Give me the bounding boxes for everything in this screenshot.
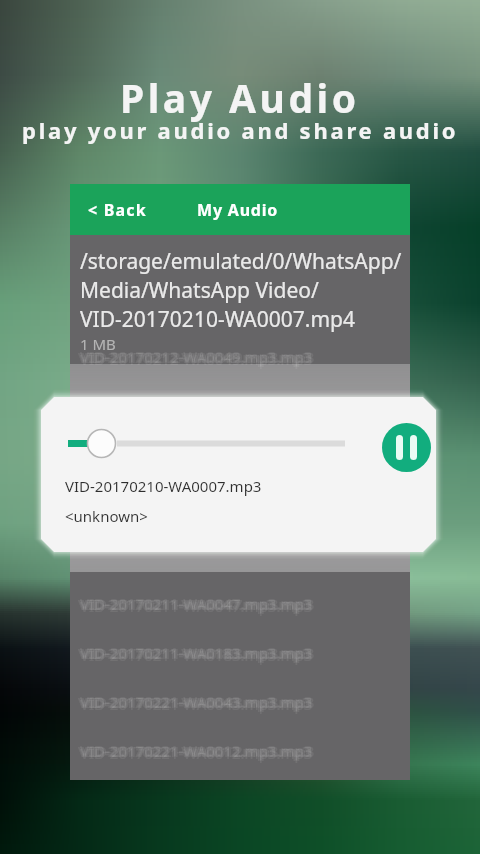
staticText: VID-20170211-WA0047.mp3.mp3 (78, 594, 311, 614)
staticText: /storage/emulated/0/WhatsApp/ (80, 247, 402, 276)
staticText: VID-20170212-WA0038.mp3.mp3 (80, 394, 313, 414)
staticText: VID-20170211-WA0047.mp3.mp3 (80, 596, 313, 616)
staticText: VID-20170212-WA0049.mp3.mp3 (80, 346, 313, 366)
staticText: play your audio and share audio (22, 115, 459, 145)
staticText: VID-20170211-WA0183.mp3.mp3 (80, 642, 313, 662)
staticText: VID-20170221-WA0043.mp3.mp3 (78, 692, 311, 712)
staticText: VID-20170212-WA0038.mp3.mp3 (82, 395, 315, 415)
staticText: VID-20170212-WA0049.mp3.mp3 (80, 347, 313, 367)
staticText: VID-20170212-WA0038.mp3.mp3 (78, 395, 311, 415)
staticText: VID-20170211-WA0047.mp3.mp3 (80, 594, 313, 614)
staticText: Media/WhatsApp Video/ (80, 276, 319, 305)
staticText: VID-20170221-WA0043.mp3.mp3 (80, 694, 313, 714)
staticText: <unknown> (65, 506, 148, 526)
staticText: VID-20170212-WA0049.mp3.mp3 (78, 347, 311, 367)
staticText: VID-20170221-WA0043.mp3.mp3 (80, 692, 313, 712)
staticText: VID-20170211-WA0183.mp3.mp3 (78, 643, 311, 663)
staticText: < Back (88, 199, 147, 221)
staticText: VID-20170221-WA0043.mp3.mp3 (82, 692, 315, 712)
staticText: VID-20170212-WA0038.mp3.mp3 (80, 395, 313, 415)
staticText: VID-20170212-WA0049.mp3.mp3 (80, 349, 313, 369)
staticText: Play Audio (120, 71, 360, 124)
staticText: VID-20170210-WA0007.mp4 (80, 305, 356, 334)
staticText: VID-20170221-WA0012.mp3.mp3 (82, 741, 315, 761)
staticText: VID-20170221-WA0043.mp3.mp3 (80, 691, 313, 711)
staticText: VID-20170210-WA0007.mp3 (65, 476, 262, 496)
button[interactable]: Pause (382, 423, 431, 472)
staticText: 1 MB (80, 334, 116, 354)
staticText: VID-20170221-WA0012.mp3.mp3 (80, 741, 313, 761)
staticText: VID-20170211-WA0183.mp3.mp3 (80, 643, 313, 663)
staticText: VID-20170221-WA0012.mp3.mp3 (80, 740, 313, 760)
staticText: VID-20170211-WA0183.mp3.mp3 (80, 645, 313, 665)
staticText: VID-20170211-WA0183.mp3.mp3 (82, 643, 315, 663)
staticText: VID-20170221-WA0012.mp3.mp3 (80, 743, 313, 763)
staticText: VID-20170211-WA0047.mp3.mp3 (82, 594, 315, 614)
staticText: My Audio (197, 199, 279, 221)
staticText: VID-20170221-WA0012.mp3.mp3 (78, 741, 311, 761)
staticText: VID-20170212-WA0049.mp3.mp3 (82, 347, 315, 367)
button[interactable]: < Back (70, 184, 410, 235)
staticText: VID-20170211-WA0047.mp3.mp3 (80, 593, 313, 613)
